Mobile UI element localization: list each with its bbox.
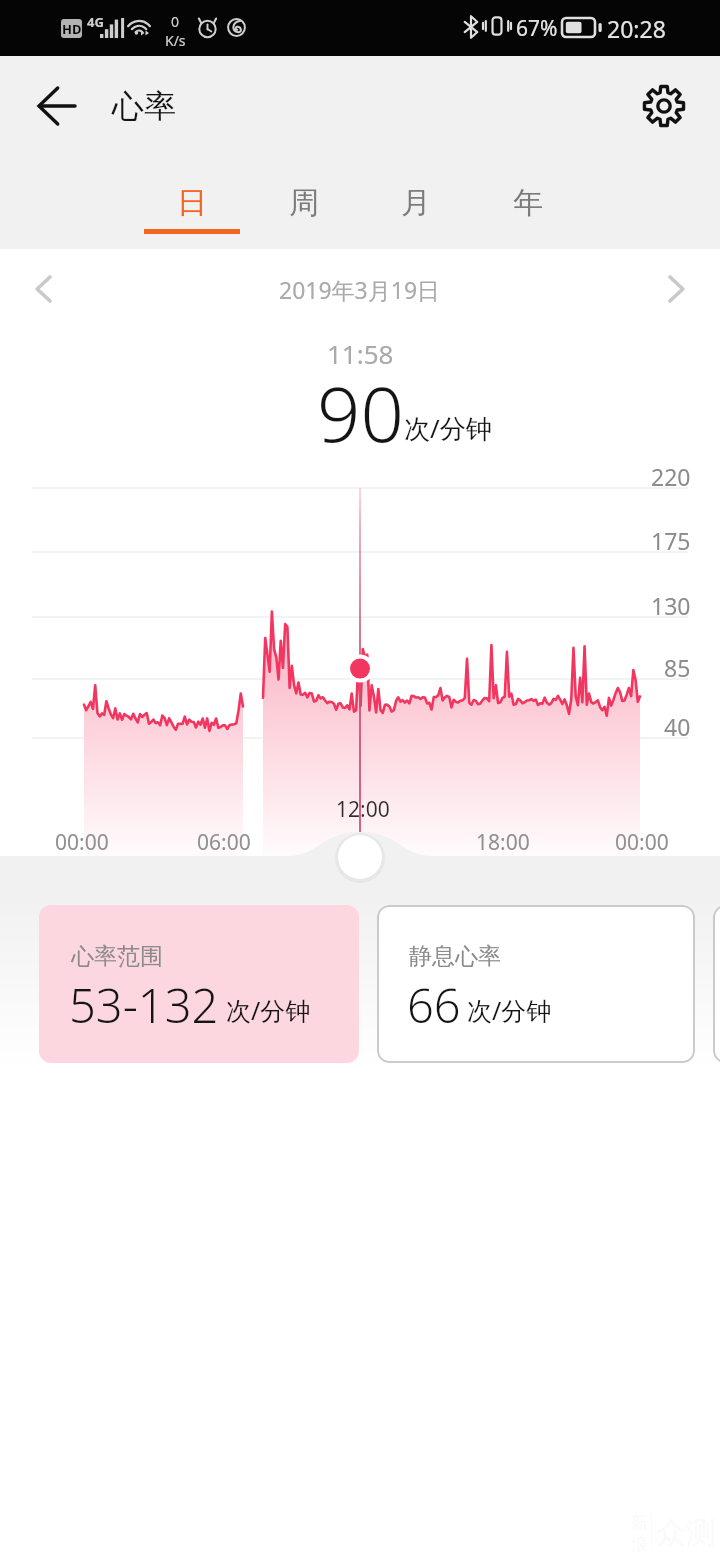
staticText: 4G bbox=[87, 13, 104, 31]
staticText: K/s bbox=[165, 31, 186, 50]
staticText: 12:00 bbox=[336, 795, 390, 824]
staticText: 月 bbox=[401, 184, 431, 222]
staticText: 00:00 bbox=[55, 828, 109, 857]
staticText: 90 bbox=[317, 361, 404, 465]
staticText: 00:00 bbox=[615, 828, 669, 857]
staticText: 次/分钟 bbox=[226, 993, 311, 1027]
staticText: 18:00 bbox=[476, 828, 530, 857]
staticText: 130 bbox=[651, 590, 691, 621]
button[interactable]: 月 bbox=[360, 156, 472, 246]
button[interactable]: Settings bbox=[627, 69, 701, 143]
staticText: 11:58 bbox=[327, 336, 394, 371]
staticText: 20:28 bbox=[607, 13, 666, 44]
staticText: 次/分钟 bbox=[404, 410, 492, 446]
staticText: 静息心率 bbox=[409, 942, 501, 971]
button[interactable] bbox=[713, 905, 720, 1063]
staticText: 85 bbox=[664, 652, 691, 683]
staticText: 67% bbox=[516, 14, 558, 43]
staticText: 2019年3月19日 bbox=[279, 274, 441, 305]
staticText: 日 bbox=[177, 184, 207, 222]
staticText: HD bbox=[62, 20, 82, 38]
button[interactable]: 静息心率 bbox=[377, 905, 695, 1063]
staticText: 周 bbox=[289, 184, 319, 222]
button[interactable]: Previous day bbox=[10, 254, 80, 324]
staticText: 175 bbox=[651, 525, 691, 556]
button[interactable]: 年 bbox=[472, 156, 584, 246]
staticText: 53-132 bbox=[69, 973, 219, 1037]
button[interactable]: Back bbox=[20, 69, 94, 143]
button[interactable]: 心率范围 bbox=[39, 905, 359, 1063]
staticText: 年 bbox=[513, 184, 543, 222]
button[interactable]: 日 bbox=[136, 156, 248, 246]
staticText: 220 bbox=[651, 461, 691, 492]
staticText: 心率 bbox=[112, 86, 176, 126]
staticText: 40 bbox=[664, 711, 691, 742]
staticText: 66 bbox=[407, 973, 461, 1037]
button[interactable]: Next day bbox=[640, 254, 710, 324]
staticText: 次/分钟 bbox=[467, 993, 552, 1027]
staticText: 0 bbox=[171, 12, 180, 31]
button[interactable]: 周 bbox=[248, 156, 360, 246]
staticText: 心率范围 bbox=[71, 942, 163, 971]
staticText: 06:00 bbox=[197, 828, 251, 857]
